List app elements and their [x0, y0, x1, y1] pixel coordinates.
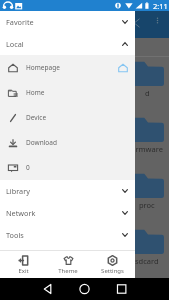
staticText: d — [145, 88, 150, 98]
other: Back — [132, 18, 142, 28]
staticText: Local — [6, 39, 24, 49]
staticText: proc — [139, 200, 155, 210]
button[interactable]: Favorite — [0, 11, 135, 33]
button[interactable]: Device — [0, 105, 135, 130]
staticText: Library — [6, 186, 30, 196]
button[interactable]: Homepage — [0, 55, 135, 80]
button[interactable]: d — [125, 57, 169, 98]
button[interactable]: firmware — [125, 113, 169, 154]
other: More options — [154, 17, 161, 24]
staticText: firmware — [131, 144, 163, 154]
button[interactable]: Home — [0, 80, 135, 105]
staticText: Network — [6, 208, 36, 218]
staticText: Exit — [18, 267, 29, 275]
button[interactable]: Local — [0, 33, 135, 55]
staticText: sdcard — [135, 256, 159, 266]
button[interactable]: Download — [0, 130, 135, 155]
staticText: Tools — [6, 230, 24, 240]
staticText: 0 — [26, 163, 30, 172]
button[interactable]: sdcard — [125, 225, 169, 266]
staticText: 2:11 — [153, 1, 168, 11]
staticText: Home — [26, 88, 45, 97]
button[interactable]: proc — [125, 169, 169, 210]
staticText: Favorite — [6, 17, 34, 27]
other: Set as homepage — [118, 63, 128, 73]
button[interactable]: Exit — [1, 251, 45, 278]
button[interactable]: Network — [0, 202, 135, 224]
button[interactable]: Settings — [90, 251, 134, 278]
staticText: Theme — [58, 267, 78, 275]
button[interactable]: 0 — [0, 155, 135, 180]
button[interactable]: Tools — [0, 224, 135, 246]
button[interactable]: Theme — [46, 251, 90, 278]
button[interactable]: Library — [0, 180, 135, 202]
staticText: Download — [26, 138, 57, 147]
staticText: Settings — [101, 267, 124, 275]
staticText: Homepage — [26, 63, 60, 72]
staticText: Device — [26, 113, 47, 122]
